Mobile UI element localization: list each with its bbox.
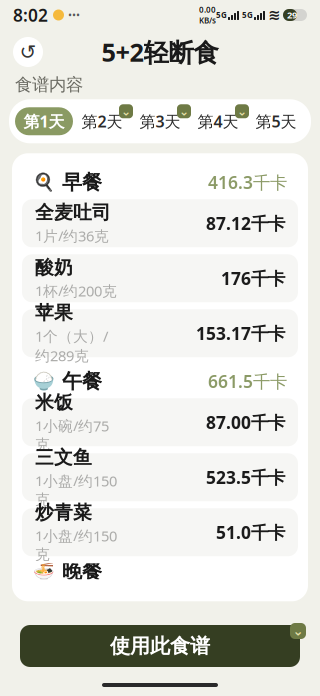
staticText: ⌄ bbox=[292, 623, 303, 638]
staticText: 第3天 bbox=[139, 111, 180, 132]
staticText: ⌄ bbox=[179, 104, 189, 118]
button[interactable]: 第2天 bbox=[73, 104, 131, 138]
staticText: 153.17千卡 bbox=[196, 322, 285, 345]
staticText: ••• bbox=[68, 8, 80, 22]
button[interactable]: 三文鱼 bbox=[22, 453, 298, 501]
staticText: 🍚 bbox=[33, 371, 55, 391]
staticText: 661.5千卡 bbox=[208, 370, 287, 393]
button[interactable]: 第3天 bbox=[131, 104, 189, 138]
staticText: 1小盘/约150克 bbox=[35, 471, 117, 508]
staticText: 1小碗/约75克 bbox=[35, 416, 109, 453]
button[interactable]: 米饭 bbox=[22, 398, 298, 446]
staticText: KB/s bbox=[199, 15, 216, 26]
staticText: 29 bbox=[287, 9, 297, 21]
staticText: 523.5千卡 bbox=[206, 466, 285, 489]
staticText: 三文鱼 bbox=[35, 446, 92, 469]
staticText: 第5天 bbox=[255, 111, 296, 132]
staticText: 1个（大）/约289克 bbox=[35, 326, 108, 365]
button[interactable]: 第4天 bbox=[189, 104, 247, 138]
staticText: 416.3千卡 bbox=[208, 171, 287, 194]
staticText: 午餐 bbox=[62, 369, 102, 394]
staticText: 第2天 bbox=[81, 111, 122, 132]
staticText: 51.0千卡 bbox=[216, 521, 285, 544]
button[interactable]: 使用此食谱 bbox=[20, 625, 300, 667]
staticText: 5+2轻断食 bbox=[101, 35, 218, 69]
staticText: ≋ bbox=[268, 7, 280, 23]
staticText: 第4天 bbox=[197, 111, 238, 132]
staticText: 炒青菜 bbox=[35, 501, 92, 524]
staticText: 8:02 bbox=[13, 3, 48, 26]
button[interactable]: 第5天 bbox=[247, 104, 305, 138]
staticText: 第1天 bbox=[23, 111, 64, 132]
staticText: 早餐 bbox=[62, 170, 102, 195]
staticText: 食谱内容 bbox=[15, 74, 83, 95]
button[interactable]: 全麦吐司 bbox=[22, 199, 298, 247]
staticText: 0.00 bbox=[199, 4, 216, 15]
staticText: 🍳 bbox=[33, 172, 55, 192]
staticText: 5G bbox=[242, 9, 253, 20]
staticText: 1杯/约200克 bbox=[35, 281, 117, 300]
staticText: 1小盘/约150克 bbox=[35, 526, 117, 563]
staticText: 176千卡 bbox=[221, 267, 285, 290]
button[interactable]: 第1天 bbox=[15, 104, 73, 138]
staticText: 全麦吐司 bbox=[35, 201, 111, 224]
staticText: ↺ bbox=[19, 41, 36, 63]
button[interactable]: 苹果 bbox=[22, 309, 298, 357]
staticText: 1片/约36克 bbox=[35, 226, 109, 245]
staticText: ⌄ bbox=[237, 104, 247, 118]
staticText: 米饭 bbox=[35, 391, 73, 414]
staticText: 5G bbox=[216, 9, 227, 20]
staticText: 晚餐 bbox=[62, 559, 102, 584]
staticText: 87.00千卡 bbox=[206, 411, 285, 434]
staticText: 酸奶 bbox=[35, 256, 73, 279]
staticText: 使用此食谱 bbox=[110, 634, 210, 658]
staticText: ⌄ bbox=[121, 104, 131, 118]
staticText: 🍜 bbox=[33, 561, 55, 581]
button[interactable]: 炒青菜 bbox=[22, 508, 298, 556]
staticText: 87.12千卡 bbox=[206, 212, 285, 235]
staticText: 苹果 bbox=[35, 301, 73, 324]
button[interactable]: 酸奶 bbox=[22, 254, 298, 302]
button[interactable]: Back bbox=[13, 37, 43, 67]
